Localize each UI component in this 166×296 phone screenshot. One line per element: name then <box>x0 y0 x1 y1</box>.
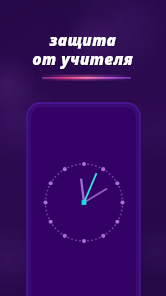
button[interactable]: Защита от учителя — экран приложения <box>0 0 166 296</box>
